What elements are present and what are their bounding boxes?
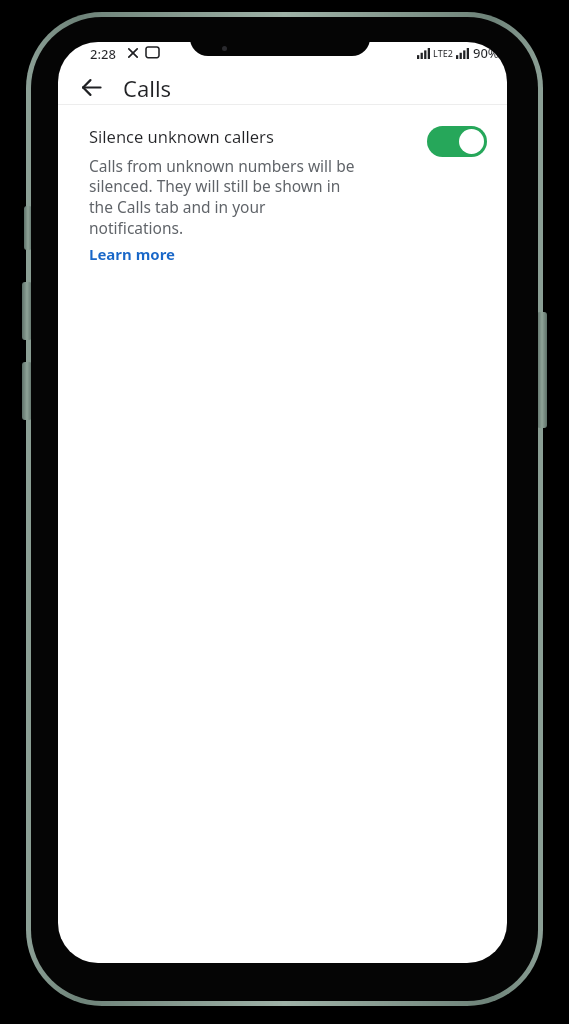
button[interactable]: Learn more [89,244,176,264]
staticText: Learn more [89,244,176,264]
staticText: 2:28 [90,45,116,63]
staticText: Calls [123,73,172,103]
button[interactable]: Silence unknown callers [58,105,507,278]
button[interactable]: Back [70,66,112,108]
staticText: 90% [473,44,499,62]
button[interactable]: Silence unknown callers toggle, on [427,126,487,157]
staticText: Silence unknown callers [89,125,274,147]
staticText: LTE2 [433,47,453,59]
staticText: Calls from unknown numbers will be silen… [89,155,361,239]
